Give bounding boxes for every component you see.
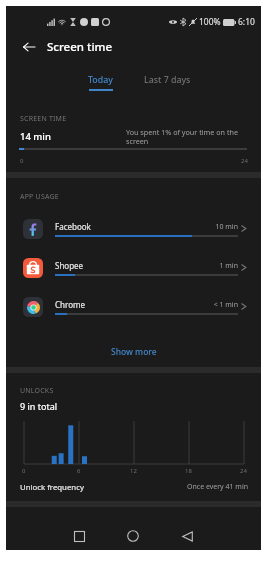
staticText: Today (88, 74, 113, 86)
button[interactable]: Facebook (6, 210, 261, 248)
button[interactable]: Home (119, 522, 147, 550)
staticText: 1 min (191, 261, 238, 271)
staticText: 100% (199, 16, 221, 28)
staticText: Show more (111, 346, 157, 358)
staticText: < 1 min (191, 300, 238, 310)
staticText: 9 in total (20, 400, 58, 412)
staticText: 0 (22, 467, 26, 475)
staticText: 0 (20, 157, 24, 165)
staticText: UNLOCKS (20, 386, 54, 396)
staticText: 24 (241, 157, 248, 165)
staticText: 24 (240, 467, 247, 475)
staticText: 10 min (191, 222, 238, 232)
staticText: Once every 41 min (187, 482, 249, 492)
button[interactable]: Show more (6, 340, 261, 364)
staticText: Chrome (55, 299, 85, 310)
staticText: 6 (77, 467, 81, 475)
button[interactable]: Shopee (6, 249, 261, 287)
staticText: You spent 1% of your time on the screen (126, 127, 238, 146)
button[interactable]: Back (173, 522, 201, 550)
staticText: Unlock frequency (20, 482, 84, 493)
button[interactable]: Today (82, 70, 119, 95)
button[interactable]: Recents (65, 522, 93, 550)
staticText: Facebook (55, 221, 91, 232)
staticText: Shopee (55, 260, 84, 271)
staticText: SCREEN TIME (20, 114, 67, 124)
staticText: 14 min (20, 130, 51, 143)
staticText: 12 (130, 467, 137, 475)
button[interactable]: Back (17, 35, 41, 59)
staticText: Last 7 days (144, 74, 191, 86)
staticText: APP USAGE (20, 192, 59, 202)
staticText: 18 (185, 467, 192, 475)
button[interactable]: Last 7 days (138, 70, 197, 90)
button[interactable]: Chrome (6, 288, 261, 326)
staticText: 6:10 (238, 16, 255, 28)
staticText: Screen time (47, 39, 113, 55)
